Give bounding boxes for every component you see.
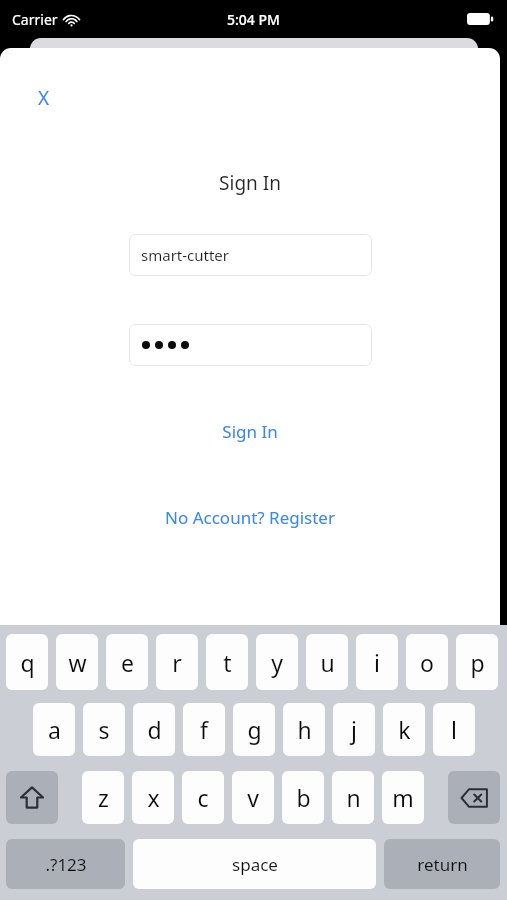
button[interactable]: .?123 (6, 839, 125, 889)
button[interactable]: Close (24, 78, 64, 118)
staticText: Carrier (12, 10, 58, 29)
button[interactable]: smart-cutter (129, 234, 372, 276)
staticText: s (98, 714, 110, 745)
staticText: o (420, 647, 434, 678)
staticText: j (351, 714, 357, 745)
staticText: X (38, 85, 50, 111)
button[interactable]: h (283, 703, 325, 756)
staticText: 5:04 PM (227, 10, 280, 29)
button[interactable]: Shift (6, 771, 58, 824)
button[interactable]: s (83, 703, 125, 756)
staticText: i (374, 647, 380, 678)
staticText: q (20, 647, 35, 678)
staticText: h (297, 714, 312, 745)
staticText: m (392, 782, 414, 813)
button[interactable]: j (333, 703, 375, 756)
staticText: v (247, 782, 259, 813)
button[interactable]: b (282, 771, 324, 824)
staticText: d (147, 714, 162, 745)
staticText: k (398, 714, 411, 745)
button[interactable]: return (384, 839, 500, 889)
staticText: g (247, 714, 262, 745)
button[interactable]: n (332, 771, 374, 824)
staticText: l (451, 714, 457, 745)
staticText: c (197, 782, 209, 813)
staticText: smart-cutter (141, 245, 230, 265)
button[interactable]: u (306, 634, 348, 690)
staticText: w (68, 647, 87, 678)
staticText: y (271, 647, 283, 678)
button[interactable]: w (56, 634, 98, 690)
staticText: return (417, 853, 468, 876)
staticText: e (121, 647, 134, 678)
staticText: t (223, 647, 232, 678)
staticText: z (98, 782, 109, 813)
staticText: a (48, 714, 61, 745)
button[interactable]: p (456, 634, 498, 690)
button[interactable]: l (433, 703, 475, 756)
button[interactable]: g (233, 703, 275, 756)
staticText: p (470, 647, 485, 678)
button[interactable]: m (382, 771, 424, 824)
button[interactable]: c (182, 771, 224, 824)
button[interactable]: i (356, 634, 398, 690)
button[interactable]: f (183, 703, 225, 756)
staticText: x (147, 782, 160, 813)
button[interactable]: r (156, 634, 198, 690)
button[interactable]: o (406, 634, 448, 690)
button[interactable]: q (6, 634, 48, 690)
staticText: Sign In (219, 170, 281, 196)
button[interactable]: k (383, 703, 425, 756)
button[interactable]: t (206, 634, 248, 690)
button[interactable]: x (132, 771, 174, 824)
button[interactable]: a (33, 703, 75, 756)
staticText: space (232, 853, 278, 876)
staticText: r (172, 647, 182, 678)
staticText: f (200, 714, 208, 745)
staticText: .?123 (45, 853, 87, 876)
staticText: Sign In (222, 420, 278, 443)
button[interactable]: No Account? Register (135, 500, 365, 534)
button[interactable]: Backspace (448, 771, 500, 824)
staticText: u (320, 647, 335, 678)
button[interactable]: e (106, 634, 148, 690)
button[interactable]: d (133, 703, 175, 756)
staticText: No Account? Register (165, 506, 335, 529)
button[interactable]: v (232, 771, 274, 824)
button[interactable]: z (82, 771, 124, 824)
button[interactable]: space (133, 839, 376, 889)
button[interactable]: y (256, 634, 298, 690)
staticText: n (346, 782, 361, 813)
button[interactable] (129, 324, 372, 366)
staticText: b (296, 782, 311, 813)
button[interactable]: Sign In (180, 414, 320, 448)
